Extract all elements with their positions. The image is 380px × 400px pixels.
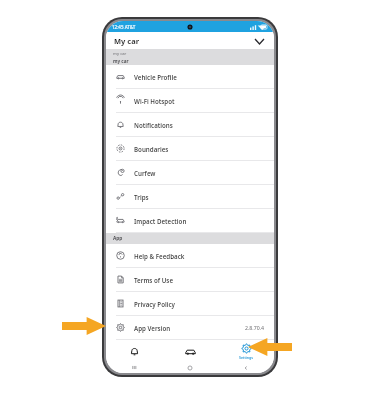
button[interactable]: Help & Feedback [106, 244, 274, 267]
staticText: 2.8.70.4 [245, 324, 265, 331]
staticText: App [113, 235, 123, 242]
button[interactable]: Privacy Policy [106, 292, 274, 315]
staticText: Notifications [134, 121, 173, 129]
button[interactable]: Notifications [106, 113, 274, 136]
button[interactable]: App Version [106, 316, 274, 339]
button[interactable]: Boundaries [106, 137, 274, 160]
staticText: My car [114, 36, 140, 46]
staticText: 12:45 AT&T [112, 24, 136, 30]
button[interactable]: Select vehicle [252, 34, 266, 48]
button[interactable]: Terms of Use [106, 268, 274, 291]
button[interactable]: Curfew [106, 161, 274, 184]
staticText: Impact Detection [134, 217, 187, 225]
button[interactable]: Impact Detection [106, 209, 274, 232]
button[interactable]: Notifications [106, 340, 162, 362]
button[interactable]: Trips [106, 185, 274, 208]
staticText: Wi-Fi Hotspot [134, 97, 175, 105]
staticText: Terms of Use [134, 276, 174, 284]
button[interactable]: Settings [218, 340, 274, 362]
staticText: Trips [134, 193, 149, 201]
staticText: Settings [239, 355, 253, 360]
staticText: Privacy Policy [134, 300, 175, 308]
staticText: my car [113, 58, 129, 64]
button[interactable]: Wi-Fi Hotspot [106, 89, 274, 112]
staticText: Vehicle Profile [134, 73, 177, 81]
button[interactable]: Vehicle Profile [106, 65, 274, 88]
button[interactable]: Vehicle [162, 340, 218, 362]
staticText: Curfew [134, 169, 156, 177]
staticText: Boundaries [134, 145, 169, 153]
staticText: Help & Feedback [134, 252, 185, 260]
staticText: App Version [134, 324, 171, 332]
staticText: my car [113, 51, 127, 57]
